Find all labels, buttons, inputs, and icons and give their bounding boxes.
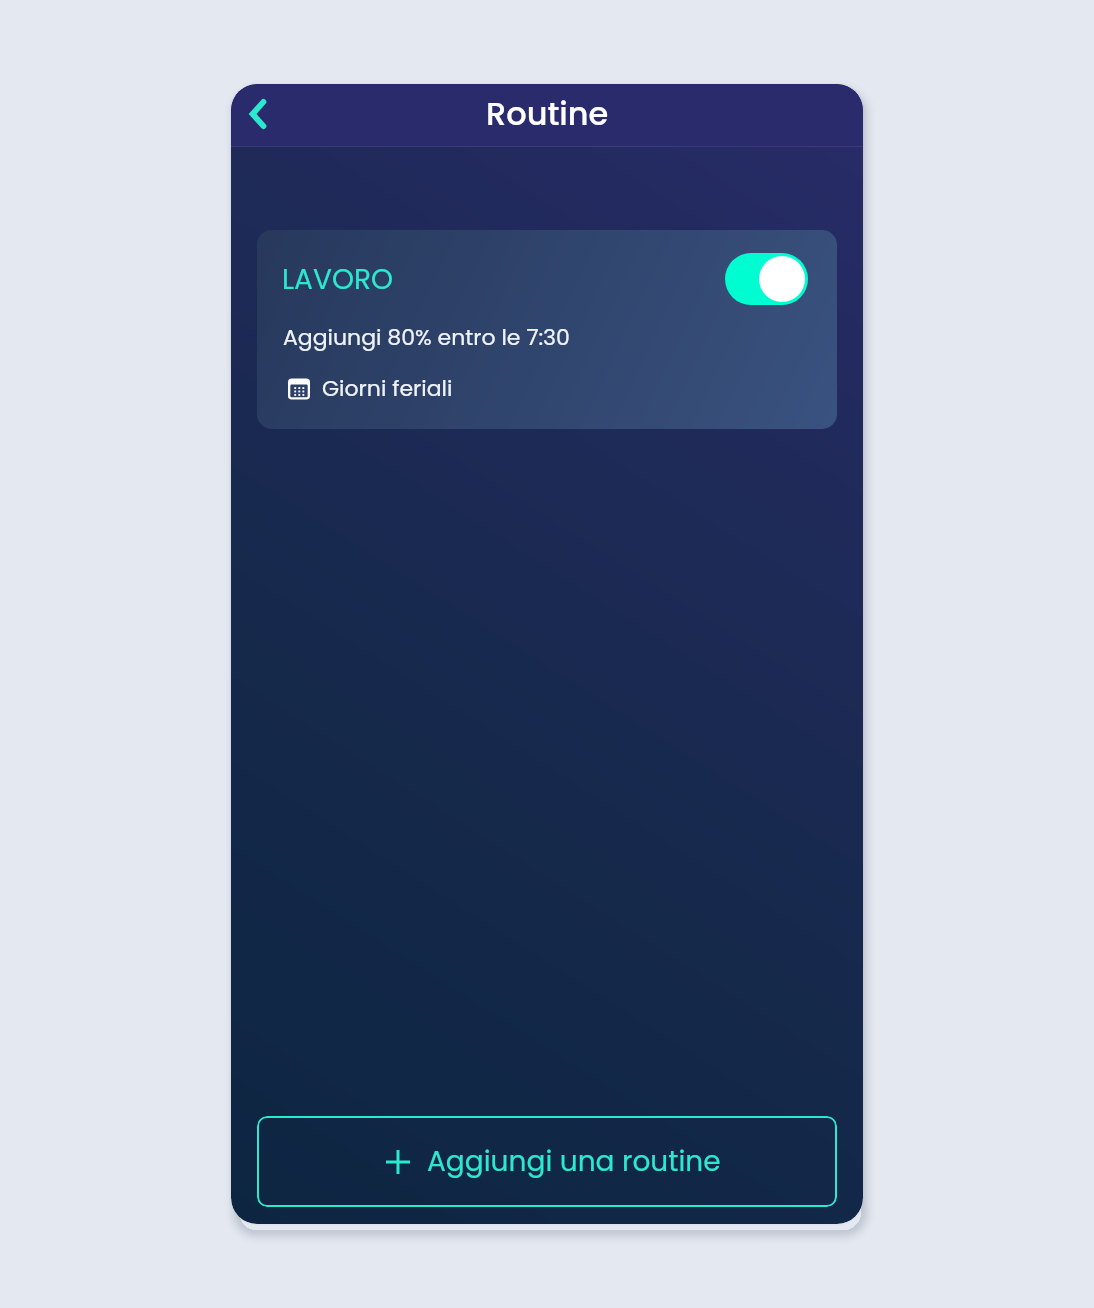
button[interactable]: Indietro	[232, 88, 284, 140]
button[interactable]: LAVORO	[257, 230, 837, 429]
button[interactable]: Aggiungi una routine	[257, 1116, 837, 1207]
staticText: Routine	[486, 91, 609, 136]
staticText: Aggiungi una routine	[427, 1142, 721, 1181]
button[interactable]: Attiva routine	[725, 253, 808, 305]
staticText: Giorni feriali	[322, 373, 453, 404]
staticText: Aggiungi 80% entro le 7:30	[283, 322, 570, 353]
staticText: LAVORO	[282, 260, 393, 299]
